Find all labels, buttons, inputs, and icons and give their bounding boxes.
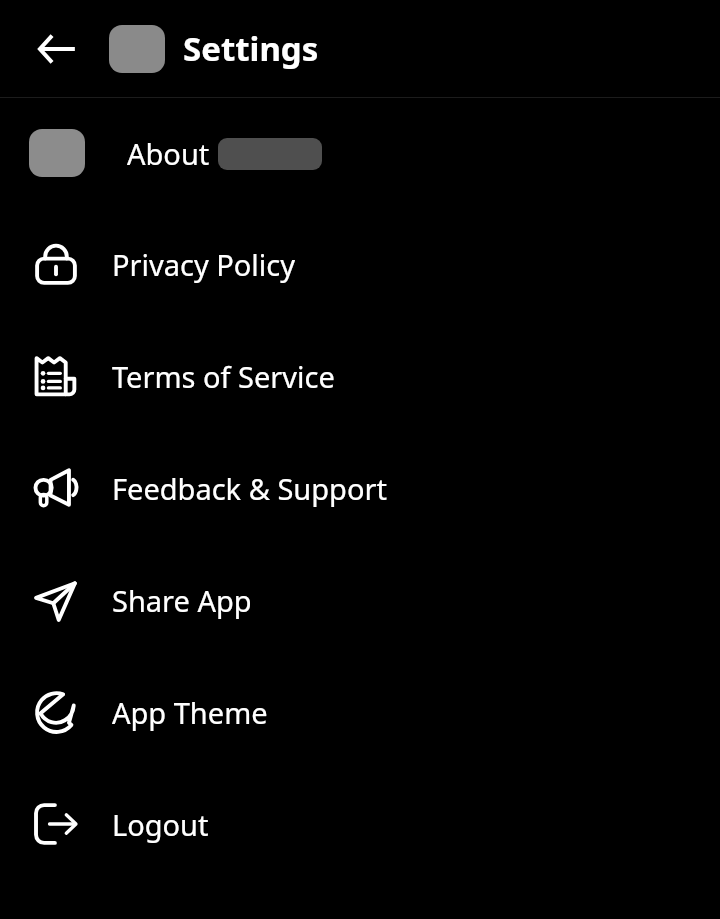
staticText: Privacy Policy [112,245,296,284]
other: App Theme [29,685,83,739]
other: Terms of Service [29,349,83,403]
button[interactable]: Privacy Policy [0,208,720,320]
button[interactable]: Share App [0,544,720,656]
button[interactable]: About [0,98,720,208]
other: Share App [29,573,83,627]
other: Privacy Policy [29,237,83,291]
staticText: Terms of Service [112,357,335,396]
staticText: Feedback & Support [112,469,387,508]
staticText: Share App [112,581,252,620]
staticText: Settings [183,26,319,71]
button[interactable]: Terms of Service [0,320,720,432]
button[interactable]: Back [26,18,88,80]
staticText: Logout [112,805,209,844]
other: Feedback and Support [29,461,83,515]
other: Logout [29,797,83,851]
button[interactable]: Feedback and Support [0,432,720,544]
staticText: About [127,134,210,173]
staticText: App Theme [112,693,268,732]
button[interactable]: App Theme [0,656,720,768]
button[interactable]: Logout [0,768,720,880]
